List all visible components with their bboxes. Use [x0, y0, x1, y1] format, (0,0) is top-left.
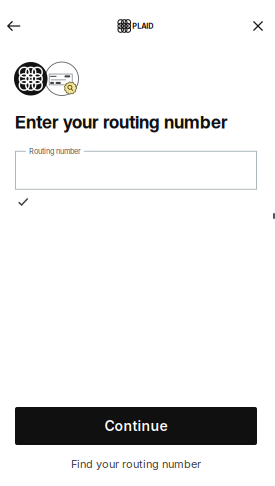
button[interactable]: Back [0, 7, 28, 45]
button[interactable]: Find your routing number [15, 456, 257, 472]
button[interactable]: Continue [15, 407, 257, 445]
staticText: PLAID [132, 22, 153, 30]
staticText: Continue [104, 417, 167, 434]
staticText: Find your routing number [71, 457, 201, 471]
staticText: Routing number [29, 147, 81, 156]
button[interactable]: Close [244, 7, 272, 45]
staticText: Enter your routing number [15, 111, 228, 133]
